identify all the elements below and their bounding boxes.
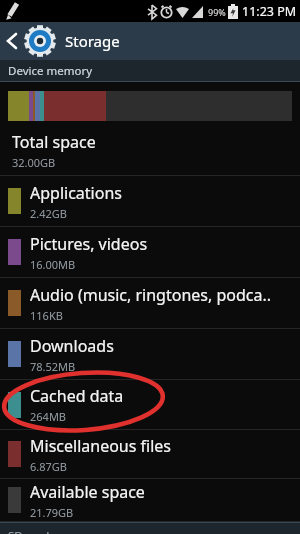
staticText: 2.42GB <box>30 206 67 221</box>
staticText: Applications <box>30 182 122 204</box>
staticText: 11:23 PM <box>242 3 297 20</box>
staticText: Available space <box>30 481 145 503</box>
button[interactable]: Applications <box>0 176 300 227</box>
staticText: Total space <box>12 131 96 153</box>
button[interactable]: Storage <box>0 22 300 60</box>
staticText: Pictures, videos <box>30 233 148 255</box>
staticText: 78.52MB <box>30 359 76 374</box>
button[interactable]: Audio (music, ringtones, podca.. <box>0 278 300 329</box>
button[interactable]: Available space <box>0 479 300 522</box>
staticText: 264MB <box>30 409 67 424</box>
button[interactable]: Miscellaneous files <box>0 430 300 479</box>
staticText: 6.87GB <box>30 459 67 474</box>
staticText: SD card <box>8 528 50 534</box>
staticText: 16.00MB <box>30 257 76 272</box>
staticText: 99% <box>208 6 226 18</box>
staticText: 21.79GB <box>30 505 74 520</box>
staticText: Downloads <box>30 335 114 357</box>
button[interactable]: Pictures, videos <box>0 227 300 278</box>
staticText: Cached data <box>30 385 124 407</box>
staticText: Device memory <box>8 63 93 79</box>
button[interactable]: Cached data <box>0 380 300 430</box>
staticText: Storage <box>65 31 120 51</box>
staticText: Audio (music, ringtones, podca.. <box>30 284 272 306</box>
staticText: 116KB <box>30 308 63 323</box>
button[interactable]: Total space <box>0 125 300 176</box>
staticText: Miscellaneous files <box>30 435 171 457</box>
staticText: 32.00GB <box>12 155 56 170</box>
button[interactable]: Downloads <box>0 329 300 380</box>
